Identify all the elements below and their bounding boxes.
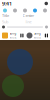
staticText: Title [2,13,9,18]
button[interactable]: AirDrop [0,8,10,12]
staticText: Song [34,32,41,35]
staticText: Center [22,13,34,18]
staticText: 9:41 [2,0,12,7]
staticText: line [25,19,31,24]
staticText: Sub [2,19,8,24]
button[interactable]: More [40,8,50,12]
button[interactable]: Notes [20,8,30,12]
button[interactable]: Location [10,8,20,12]
staticText: Artist [34,36,41,39]
button[interactable]: Song [26,32,48,39]
button[interactable]: Song [2,32,23,39]
button[interactable]: Mail [30,8,40,12]
staticText: Song [9,32,16,35]
staticText: Artist [9,36,16,39]
